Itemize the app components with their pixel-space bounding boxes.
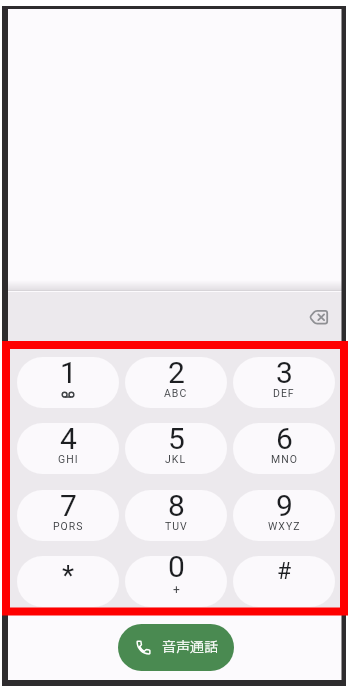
staticText: TUV xyxy=(165,520,188,530)
staticText: 9 xyxy=(276,490,293,519)
staticText: 3 xyxy=(276,357,293,386)
button[interactable]: 1 xyxy=(17,357,119,408)
button[interactable]: 0 xyxy=(125,556,227,607)
staticText: PQRS xyxy=(53,520,84,530)
staticText: 4 xyxy=(60,423,77,452)
button[interactable]: 音声通話 xyxy=(118,624,234,671)
staticText: 2 xyxy=(168,357,185,386)
staticText: 0 xyxy=(168,556,185,584)
staticText: ABC xyxy=(164,387,188,397)
button[interactable]: # xyxy=(233,556,335,607)
button[interactable]: 3 xyxy=(233,357,335,408)
staticText: DEF xyxy=(273,387,295,397)
staticText: 音声通話 xyxy=(162,637,218,658)
button[interactable]: 2 xyxy=(125,357,227,408)
staticText: # xyxy=(277,558,292,585)
button[interactable]: 4 xyxy=(17,423,119,474)
staticText: * xyxy=(62,559,75,592)
staticText: WXYZ xyxy=(268,520,301,530)
staticText: 6 xyxy=(276,423,293,452)
staticText: GHI xyxy=(58,453,79,463)
staticText: + xyxy=(173,583,180,596)
button[interactable]: 8 xyxy=(125,490,227,541)
button[interactable]: * xyxy=(17,556,119,607)
staticText: MNO xyxy=(271,453,298,463)
staticText: 5 xyxy=(168,423,185,452)
button[interactable]: 5 xyxy=(125,423,227,474)
staticText: 1 xyxy=(60,357,77,386)
staticText: 8 xyxy=(168,490,185,519)
button[interactable]: 6 xyxy=(233,423,335,474)
button[interactable]: 9 xyxy=(233,490,335,541)
staticText: 7 xyxy=(60,490,77,519)
staticText: JKL xyxy=(165,453,187,463)
button[interactable]: 7 xyxy=(17,490,119,541)
button[interactable] xyxy=(303,302,334,333)
